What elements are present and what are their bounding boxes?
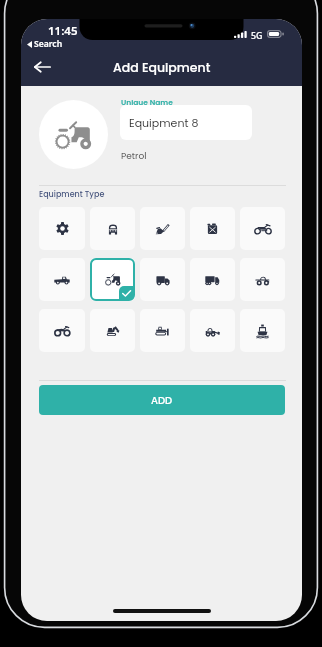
button[interactable]: Quad bike	[39, 309, 85, 352]
button[interactable]: Lorry	[190, 258, 235, 301]
button[interactable]: Box truck	[140, 258, 185, 301]
button[interactable]: Gear	[39, 207, 85, 250]
button[interactable]: Bulldozer	[140, 309, 185, 352]
button[interactable]: Buggy	[240, 258, 285, 301]
button[interactable]: Chainsaw	[140, 207, 185, 250]
staticText: Add Equipment	[113, 59, 211, 76]
staticText: ADD	[151, 393, 173, 407]
button[interactable]: Boat	[240, 309, 285, 352]
button[interactable]: Fuel can	[190, 207, 235, 250]
button[interactable]: Equipment 8	[120, 105, 252, 140]
staticText: 5G	[251, 30, 263, 42]
staticText: Equipment 8	[129, 115, 199, 130]
staticText: 11:45	[48, 23, 78, 39]
button[interactable]: Excavator	[90, 309, 135, 352]
staticText: Unique Name	[121, 97, 173, 107]
staticText: Search	[34, 38, 63, 50]
button[interactable]: Car	[90, 207, 135, 250]
staticText: Petrol	[121, 150, 147, 163]
staticText: Equipment Type	[39, 189, 105, 200]
button[interactable]: Motorcycle	[240, 207, 285, 250]
button[interactable]: Tractor	[90, 258, 135, 301]
button[interactable]: ADD	[39, 385, 285, 415]
button[interactable]: Back	[27, 52, 57, 82]
button[interactable]: Pickup truck	[39, 258, 85, 301]
button[interactable]: Wheel loader	[190, 309, 235, 352]
